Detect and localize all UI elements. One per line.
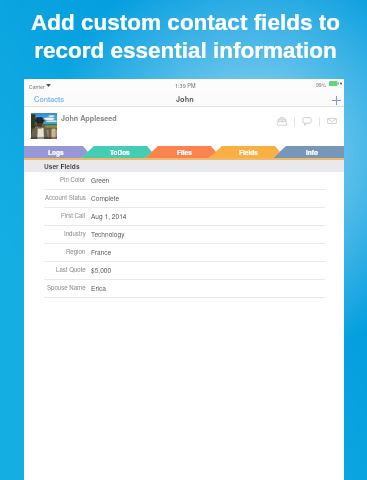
staticText: Complete (91, 193, 120, 202)
button[interactable]: Files (152, 146, 216, 158)
button[interactable]: Industry (24, 226, 344, 244)
button[interactable]: Account Status (24, 190, 344, 208)
staticText: Aug 1, 2014 (91, 211, 127, 220)
button[interactable]: Last Quote (24, 262, 344, 280)
staticText: Add custom contact fields to record esse… (31, 10, 340, 63)
staticText: Last Quote (56, 265, 86, 274)
staticText: Industry (64, 229, 86, 238)
staticText: Region (66, 247, 86, 256)
staticText: John (176, 94, 194, 105)
button[interactable]: Add contact (330, 94, 342, 106)
staticText: 99% (316, 81, 327, 88)
button[interactable]: Spouse Name (24, 280, 344, 298)
staticText: First Call (61, 211, 86, 220)
button[interactable]: Info (280, 146, 344, 158)
button[interactable]: Logs (24, 146, 88, 158)
staticText: User Fields (44, 162, 80, 171)
staticText: Spouse Name (47, 283, 86, 292)
staticText: Logs (48, 148, 64, 157)
button[interactable]: Pin Color (24, 172, 344, 190)
button[interactable]: Message (300, 114, 314, 128)
staticText: Files (177, 148, 192, 157)
staticText: Erica (91, 283, 107, 292)
staticText: Info (306, 148, 318, 157)
staticText: Pin Color (60, 175, 86, 184)
staticText: 1:39 PM (175, 82, 196, 90)
button[interactable]: Contacts (30, 91, 68, 106)
button[interactable]: Email (325, 114, 339, 128)
staticText: John Appleseed (61, 113, 117, 123)
button[interactable]: Call (275, 114, 289, 128)
button[interactable]: Fields (216, 146, 280, 158)
staticText: Technology (91, 229, 125, 238)
staticText: $5,000 (91, 265, 112, 274)
button[interactable]: ToDos (88, 146, 152, 158)
staticText: Green (91, 175, 110, 184)
staticText: Account Status (45, 193, 86, 202)
staticText: France (91, 247, 112, 256)
button[interactable]: Region (24, 244, 344, 262)
staticText: ToDos (110, 148, 130, 157)
staticText: Fields (239, 148, 258, 157)
button[interactable]: First Call (24, 208, 344, 226)
staticText: Carrier (29, 83, 45, 90)
